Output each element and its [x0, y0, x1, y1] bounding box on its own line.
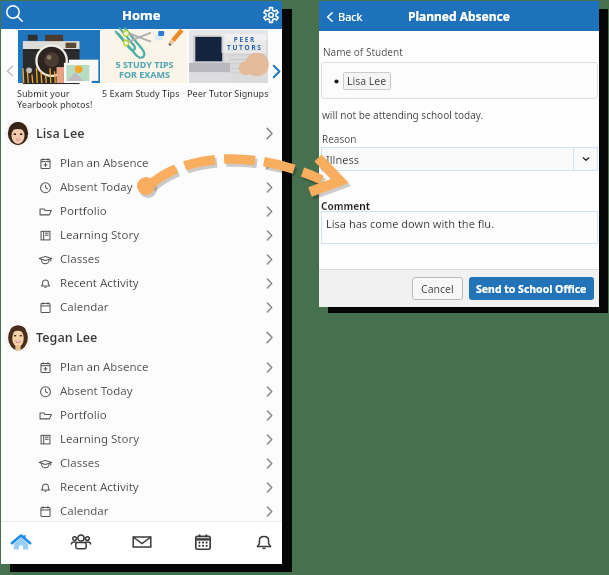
staticText: Learning Story [60, 431, 139, 447]
staticText: Recent Activity [60, 275, 139, 291]
staticText: Classes [60, 251, 100, 267]
button[interactable]: Cancel [412, 277, 463, 300]
button[interactable]: Settings [263, 7, 279, 23]
button[interactable]: Tegan Lee [1, 324, 282, 351]
button[interactable]: Lisa Lee [1, 120, 282, 147]
button[interactable]: Learning Story [1, 223, 282, 247]
button[interactable]: Learning Story [1, 427, 282, 451]
button[interactable]: Search [5, 4, 25, 24]
staticText: Name of Student [323, 45, 403, 59]
button[interactable]: Plan an Absence [1, 151, 282, 175]
button[interactable]: Notifications [236, 522, 292, 564]
staticText: Absent Today [60, 179, 133, 195]
button[interactable]: Portfolio [1, 403, 282, 427]
button[interactable]: Recent Activity [1, 271, 282, 295]
staticText: Comment [321, 199, 370, 213]
staticText: Portfolio [60, 203, 107, 219]
staticText: Recent Activity [60, 479, 139, 495]
staticText: Tegan Lee [36, 329, 98, 346]
staticText: Peer Tutor Signups [187, 87, 297, 99]
button[interactable]: Plan an Absence [1, 355, 282, 379]
staticText: 5 STUDY TIPS FOR EXAMS [115, 58, 174, 80]
button[interactable]: Home [0, 522, 49, 564]
staticText: Plan an Absence [60, 155, 149, 171]
button[interactable]: Absent Today [1, 175, 282, 199]
staticText: Lisa has come down with the flu. [326, 216, 495, 231]
button[interactable]: Illness [321, 147, 598, 171]
button[interactable]: Calendar [175, 522, 231, 564]
button[interactable]: Back [323, 9, 363, 24]
button[interactable]: Next [268, 63, 285, 80]
staticText: Submit your Yearbook photos! [17, 87, 127, 111]
staticText: P E E R T U T O R S [227, 35, 261, 52]
staticText: Lisa Lee [36, 125, 85, 142]
staticText: Reason [322, 132, 357, 146]
staticText: Lisa Lee [347, 74, 387, 88]
staticText: will not be attending school today. [322, 108, 484, 122]
staticText: Home [122, 6, 161, 24]
button[interactable]: Recent Activity [1, 475, 282, 499]
staticText: Learning Story [60, 227, 139, 243]
button[interactable]: Peer Tutor Signups [189, 30, 268, 112]
button[interactable]: Messages [114, 522, 170, 564]
button[interactable]: Previous [2, 63, 18, 79]
staticText: Calendar [60, 299, 109, 315]
button[interactable]: Submit your Yearbook photos! [18, 30, 100, 112]
button[interactable]: Classes [1, 451, 282, 475]
staticText: Plan an Absence [60, 359, 149, 375]
staticText: Illness [326, 152, 359, 167]
button[interactable]: Send to School Office [469, 277, 594, 300]
button[interactable]: 5 Exam Study Tips [101, 30, 187, 112]
staticText: Classes [60, 455, 100, 471]
staticText: Absent Today [60, 383, 133, 399]
staticText: Send to School Office [476, 282, 587, 296]
staticText: 5 Exam Study Tips [102, 87, 212, 99]
button[interactable]: Absent Today [1, 379, 282, 403]
button[interactable]: People [53, 522, 109, 564]
button[interactable]: Portfolio [1, 199, 282, 223]
button[interactable]: Calendar [1, 295, 282, 319]
staticText: Calendar [60, 503, 109, 519]
staticText: Portfolio [60, 407, 107, 423]
staticText: Planned Absence [408, 8, 510, 24]
staticText: Cancel [421, 282, 454, 296]
button[interactable]: Lisa Lee [343, 72, 391, 90]
staticText: Back [338, 9, 363, 24]
button[interactable]: Calendar [1, 499, 282, 523]
button[interactable]: Classes [1, 247, 282, 271]
